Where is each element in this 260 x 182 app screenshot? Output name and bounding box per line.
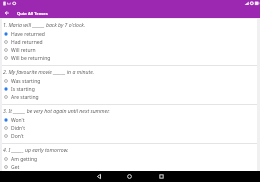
staticText: Was starting [11, 78, 41, 85]
staticText: Will return [11, 47, 36, 54]
staticText: Quiz: All Tenses [17, 11, 48, 16]
staticText: Will be returning [11, 55, 51, 62]
staticText: 2. My favourite movie ______ in a minute… [3, 68, 95, 75]
button[interactable]: Recent apps [148, 171, 174, 182]
staticText: Don't [11, 133, 24, 140]
button[interactable]: Get [2, 163, 257, 171]
button[interactable]: Will return [2, 46, 257, 54]
button[interactable]: Have returned [2, 30, 257, 38]
staticText: Have returned [11, 31, 45, 38]
button[interactable]: Home [116, 171, 142, 182]
staticText: Get [11, 164, 20, 171]
staticText: Didn't [11, 125, 25, 132]
button[interactable]: Will be returning [2, 54, 257, 62]
staticText: Are starting [11, 94, 39, 101]
button[interactable]: Back [86, 171, 112, 182]
button[interactable]: Don't [2, 132, 257, 140]
button[interactable]: Was starting [2, 77, 257, 85]
staticText: Am getting [11, 156, 38, 163]
staticText: 4. I ______ up early tomorrow. [3, 146, 69, 153]
button[interactable]: Back [0, 8, 14, 18]
staticText: Won't [11, 117, 25, 124]
staticText: Had returned [11, 39, 43, 46]
staticText: 3. It ______ be very hot again until nex… [3, 107, 110, 114]
button[interactable]: Are starting [2, 93, 257, 101]
button[interactable]: Is starting [2, 85, 257, 93]
button[interactable]: Had returned [2, 38, 257, 46]
button[interactable]: Am getting [2, 155, 257, 163]
button[interactable]: Won't [2, 116, 257, 124]
staticText: Is starting [11, 86, 35, 93]
button[interactable]: Didn't [2, 124, 257, 132]
staticText: 1. Maria will ______ back by 7 o'clock. [3, 21, 86, 28]
